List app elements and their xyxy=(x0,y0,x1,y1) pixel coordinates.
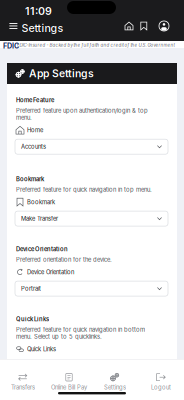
staticText: FDIC xyxy=(3,42,19,50)
staticText: 11:09 xyxy=(25,4,52,17)
staticText: Preferred feature for quick navigation i… xyxy=(16,186,152,193)
staticText: Settings xyxy=(22,22,64,34)
staticText: Bookmark xyxy=(27,198,55,206)
staticText: Quick Links xyxy=(16,315,49,323)
staticText: Accounts xyxy=(21,143,46,150)
staticText: Bookmark xyxy=(16,175,44,183)
staticText: Home Feature xyxy=(16,96,54,104)
staticText: Device Orientation xyxy=(16,245,68,253)
staticText: Device Orientation xyxy=(27,268,74,276)
staticText: Preferred orientation for the device. xyxy=(16,256,112,263)
staticText: Portrait xyxy=(21,285,41,292)
button[interactable]: Accounts xyxy=(16,134,168,154)
button[interactable]: Logout xyxy=(138,370,184,394)
staticText: Transfers xyxy=(11,384,35,391)
staticText: App Settings xyxy=(29,67,94,80)
staticText: Home xyxy=(27,127,43,134)
staticText: Make Transfer xyxy=(21,215,58,222)
button[interactable]: Settings xyxy=(92,370,138,394)
staticText: Quick Links xyxy=(27,346,56,353)
staticText: Logout xyxy=(151,384,171,391)
button[interactable]: Portrait xyxy=(16,276,168,296)
button[interactable]: Settings xyxy=(0,0,54,14)
staticText: FDIC-Insured - Backed by the full faith … xyxy=(16,42,174,48)
button[interactable]: Online Bill Pay xyxy=(46,370,92,394)
button[interactable]: Transfers xyxy=(0,370,46,394)
staticText: Online Bill Pay xyxy=(51,384,87,391)
staticText: Settings xyxy=(104,384,126,391)
staticText: Preferred feature upon authentication/lo… xyxy=(16,107,148,121)
staticText: Preferred feature for quick navigation i… xyxy=(16,326,145,340)
button[interactable]: Make Transfer xyxy=(16,206,168,226)
